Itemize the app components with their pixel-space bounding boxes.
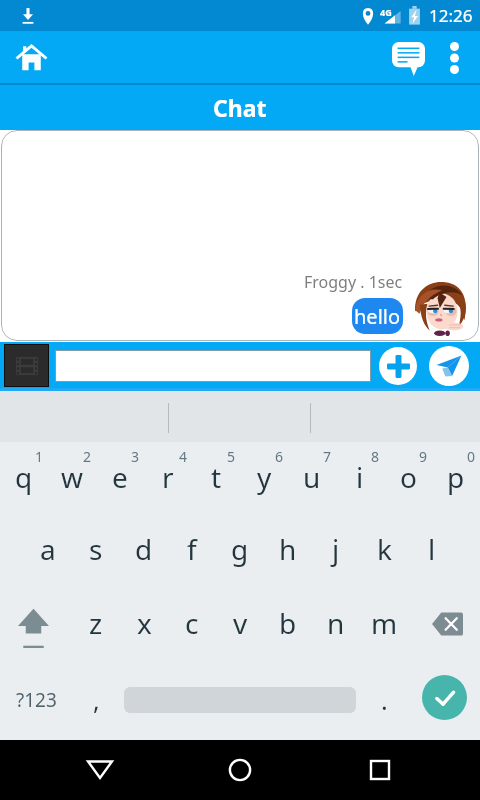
button[interactable]: Add	[379, 347, 417, 385]
staticText: 1	[35, 447, 44, 466]
button[interactable]: 0	[432, 442, 480, 516]
staticText: o	[400, 458, 417, 496]
button[interactable]: k	[360, 516, 408, 590]
staticText: b	[279, 604, 297, 642]
button[interactable]: Messages	[384, 34, 432, 82]
staticText: 8	[371, 447, 380, 466]
staticText: n	[327, 604, 345, 642]
staticText: 2	[83, 447, 92, 466]
button[interactable]: 9	[384, 442, 432, 516]
button[interactable]: a	[24, 516, 72, 590]
staticText: .	[381, 683, 388, 717]
button[interactable]: Shift	[0, 590, 72, 664]
button[interactable]: Home	[7, 34, 55, 82]
button[interactable]: 1	[0, 442, 48, 516]
button[interactable]: More options	[432, 36, 476, 80]
button[interactable]: Send	[429, 346, 469, 386]
staticText: 5	[227, 447, 236, 466]
button[interactable]: l	[408, 516, 456, 590]
button[interactable]: 7	[288, 442, 336, 516]
staticText: a	[40, 530, 56, 568]
staticText: hello	[354, 303, 401, 330]
staticText: y	[257, 458, 272, 496]
button[interactable]: j	[312, 516, 360, 590]
button[interactable]: n	[312, 590, 360, 664]
staticText: e	[112, 458, 128, 496]
staticText: 9	[419, 447, 428, 466]
button[interactable]: s	[72, 516, 120, 590]
staticText: p	[447, 458, 465, 496]
staticText: w	[61, 458, 84, 496]
button[interactable]: Media	[4, 344, 49, 387]
staticText: v	[233, 604, 248, 642]
staticText: s	[89, 530, 103, 568]
staticText: 3	[131, 447, 140, 466]
staticText: 4G	[380, 6, 392, 18]
button[interactable]: .	[360, 664, 408, 740]
staticText: k	[377, 530, 392, 568]
staticText: Froggy . 1sec	[304, 271, 403, 293]
button[interactable]: b	[264, 590, 312, 664]
staticText: u	[303, 458, 321, 496]
staticText: h	[279, 530, 297, 568]
button[interactable]: ?123	[0, 664, 72, 740]
button[interactable]: ,	[72, 664, 124, 740]
staticText: ,	[93, 683, 100, 717]
button[interactable]: Backspace	[408, 590, 480, 664]
staticText: j	[332, 530, 340, 568]
staticText: l	[428, 530, 436, 568]
button[interactable]	[55, 350, 371, 382]
button[interactable]: 6	[240, 442, 288, 516]
button[interactable]: Enter	[408, 664, 480, 740]
staticText: 4	[179, 447, 188, 466]
button[interactable]: f	[168, 516, 216, 590]
staticText: q	[15, 458, 33, 496]
button[interactable]: 3	[96, 442, 144, 516]
button[interactable]: g	[216, 516, 264, 590]
staticText: z	[89, 604, 103, 642]
staticText: 12:26	[429, 4, 473, 27]
staticText: m	[371, 604, 398, 642]
staticText: Chat	[213, 92, 267, 123]
button[interactable]: 8	[336, 442, 384, 516]
staticText: r	[162, 458, 174, 496]
button[interactable]: c	[168, 590, 216, 664]
button[interactable]	[124, 664, 356, 740]
staticText: ?123	[16, 687, 57, 713]
button[interactable]: v	[216, 590, 264, 664]
staticText: d	[135, 530, 153, 568]
button[interactable]: m	[360, 590, 408, 664]
button[interactable]: h	[264, 516, 312, 590]
staticText: g	[231, 530, 249, 568]
button[interactable]: x	[120, 590, 168, 664]
button[interactable]: Back	[74, 743, 126, 795]
staticText: f	[187, 530, 197, 568]
button[interactable]: Home	[214, 744, 266, 796]
staticText: 7	[323, 447, 332, 466]
button[interactable]: z	[72, 590, 120, 664]
staticText: c	[185, 604, 199, 642]
button[interactable]: 5	[192, 442, 240, 516]
button[interactable]: 2	[48, 442, 96, 516]
staticText: 6	[275, 447, 284, 466]
button[interactable]: d	[120, 516, 168, 590]
staticText: 0	[467, 447, 476, 466]
staticText: i	[356, 458, 364, 496]
staticText: x	[137, 604, 152, 642]
staticText: t	[211, 458, 222, 496]
button[interactable]: 4	[144, 442, 192, 516]
button[interactable]: Recents	[354, 744, 406, 796]
